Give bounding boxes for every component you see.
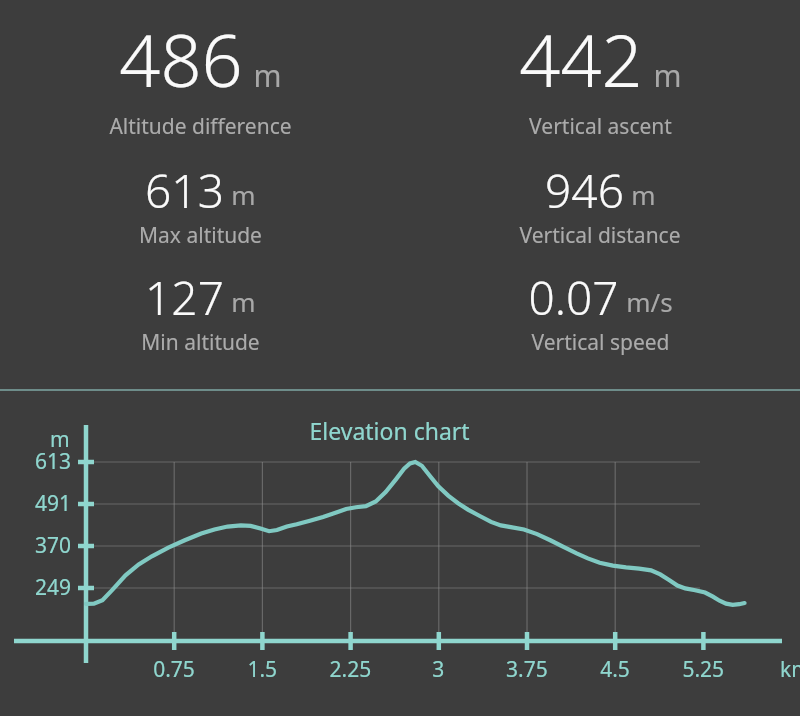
- button[interactable]: 613: [0, 159, 400, 250]
- staticText: Vertical speed: [531, 328, 670, 357]
- staticText: m: [631, 177, 656, 212]
- staticText: m: [653, 55, 682, 96]
- staticText: 613: [145, 159, 224, 217]
- button[interactable]: 0.07: [400, 266, 800, 357]
- button[interactable]: 946: [400, 159, 800, 250]
- staticText: m: [231, 284, 256, 319]
- staticText: m: [253, 55, 282, 96]
- staticText: m: [231, 177, 256, 212]
- button[interactable]: 486: [0, 10, 400, 141]
- staticText: 946: [545, 159, 624, 217]
- staticText: 127: [145, 266, 224, 324]
- staticText: Altitude difference: [109, 112, 292, 141]
- staticText: m/s: [626, 284, 673, 319]
- staticText: Max altitude: [139, 221, 262, 250]
- button[interactable]: 442: [400, 10, 800, 141]
- button[interactable]: 127: [0, 266, 400, 357]
- button[interactable]: Elevation chart: [0, 391, 800, 716]
- staticText: 486: [119, 10, 243, 106]
- staticText: 442: [519, 10, 643, 106]
- staticText: Vertical ascent: [529, 112, 672, 141]
- staticText: 0.07: [528, 266, 619, 324]
- staticText: Vertical distance: [519, 221, 681, 250]
- staticText: Min altitude: [141, 328, 260, 357]
